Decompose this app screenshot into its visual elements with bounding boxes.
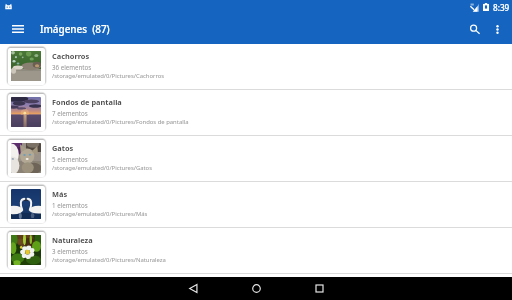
staticText: 1 elementos xyxy=(52,201,88,209)
staticText: 36 elementos xyxy=(52,63,92,71)
button[interactable]: Más xyxy=(0,182,512,227)
staticText: /storage/emulated/0/Pictures/Gatos xyxy=(52,164,153,172)
staticText: 7 elementos xyxy=(52,109,88,117)
staticText: Más xyxy=(52,189,68,199)
staticText: Imágenes (87) xyxy=(40,22,110,35)
staticText: 8:39 xyxy=(493,2,510,13)
button[interactable]: Fondos de pantalla xyxy=(0,90,512,135)
staticText: 3 elementos xyxy=(52,247,88,255)
button[interactable]: Cachorros xyxy=(0,44,512,89)
staticText: Naturaleza xyxy=(52,235,93,245)
staticText: /storage/emulated/0/Pictures/Naturaleza xyxy=(52,256,166,264)
staticText: Fondos de pantalla xyxy=(52,97,122,107)
button[interactable]: Home xyxy=(233,277,280,300)
button[interactable]: Menu xyxy=(3,14,33,44)
button[interactable]: Recents xyxy=(296,277,343,300)
button[interactable]: Back xyxy=(170,277,217,300)
button[interactable]: Naturaleza xyxy=(0,228,512,273)
button[interactable]: Search xyxy=(462,14,488,44)
button[interactable]: Gatos xyxy=(0,136,512,181)
button[interactable]: More options xyxy=(484,14,510,44)
staticText: /storage/emulated/0/Pictures/Fondos de p… xyxy=(52,118,189,126)
staticText: /storage/emulated/0/Pictures/Cachorros xyxy=(52,72,165,80)
staticText: /storage/emulated/0/Pictures/Más xyxy=(52,210,148,218)
staticText: Gatos xyxy=(52,143,74,153)
staticText: 5 elementos xyxy=(52,155,88,163)
staticText: Cachorros xyxy=(52,51,90,61)
